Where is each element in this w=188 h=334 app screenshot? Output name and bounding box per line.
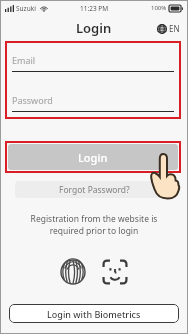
button[interactable]: Email [12,54,174,72]
staticText: 11:23 PM [80,4,109,13]
button[interactable]: Fingerprint login [60,259,86,285]
staticText: Login with Biometrics [47,308,141,320]
button[interactable]: Password [12,94,174,112]
staticText: 100% [151,4,167,12]
staticText: Registration from the website is require… [11,213,177,237]
staticText: Email [12,54,36,66]
staticText: Login [78,150,108,165]
staticText: Login [76,19,112,37]
staticText: EN [169,23,180,34]
button[interactable]: Change language [157,23,180,34]
button[interactable]: Login [8,144,178,170]
staticText: Suzuki [16,4,36,13]
staticText: Forgot Password? [59,184,130,196]
button[interactable]: Face ID login [102,259,128,285]
staticText: Password [12,94,53,106]
button[interactable]: Login with Biometrics [9,304,179,323]
button[interactable]: Forgot Password? [15,181,173,198]
